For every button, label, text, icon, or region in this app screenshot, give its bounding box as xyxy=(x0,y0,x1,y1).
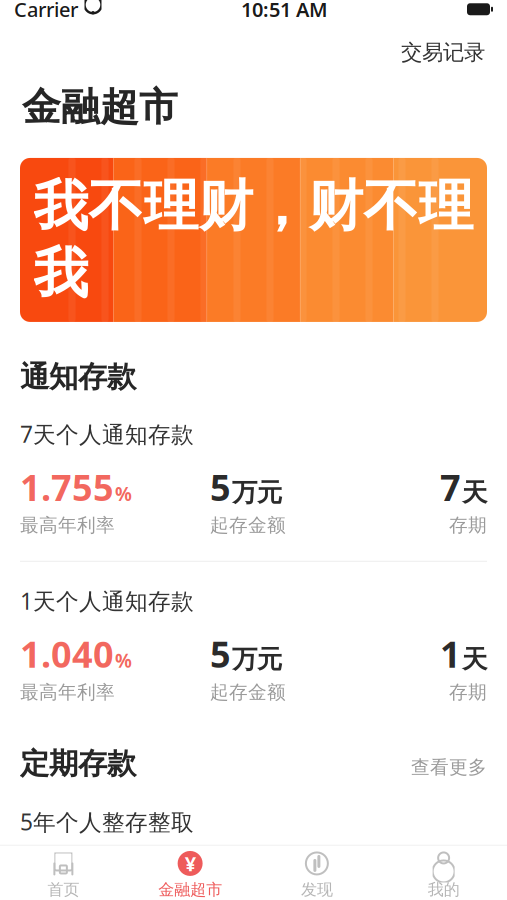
button[interactable]: 发现 xyxy=(253,845,380,900)
staticText: 查看更多 xyxy=(411,756,487,779)
staticText: 万元 xyxy=(232,644,282,675)
staticText: Carrier xyxy=(14,0,78,23)
button[interactable]: 交易记录 xyxy=(397,35,489,69)
button[interactable]: 首页 xyxy=(0,845,127,900)
staticText: 交易记录 xyxy=(401,39,485,65)
staticText: 存期 xyxy=(449,514,487,537)
staticText: % xyxy=(115,648,132,673)
staticText: 通知存款 xyxy=(20,359,136,395)
button[interactable]: 我不理财，财不理我 xyxy=(20,158,487,322)
staticText: ¥ xyxy=(185,850,196,877)
button[interactable]: 我的 xyxy=(380,845,507,900)
staticText: % xyxy=(115,481,132,506)
staticText: 1.755 xyxy=(20,463,114,511)
staticText: 5年个人整存整取 xyxy=(20,807,194,837)
staticText: 起存金额 xyxy=(210,514,286,537)
staticText: 10:51 AM xyxy=(241,0,328,23)
staticText: 定期存款 xyxy=(20,746,136,782)
staticText: 1.040 xyxy=(20,630,114,678)
button[interactable]: 查看更多 xyxy=(403,752,487,783)
staticText: 首页 xyxy=(47,880,79,900)
staticText: 金融超市 xyxy=(22,83,178,131)
staticText: 起存金额 xyxy=(210,681,286,704)
staticText: 万元 xyxy=(232,477,282,508)
staticText: 发现 xyxy=(301,880,333,900)
button[interactable]: ¥ xyxy=(127,845,254,900)
staticText: 7天个人通知存款 xyxy=(20,419,194,449)
staticText: 1天个人通知存款 xyxy=(20,586,194,616)
staticText: 天 xyxy=(462,477,487,508)
staticText: 1 xyxy=(440,630,461,678)
button[interactable]: 1天个人通知存款 xyxy=(20,584,487,706)
staticText: 天 xyxy=(462,644,487,675)
staticText: 最高年利率 xyxy=(20,681,115,704)
button[interactable]: 7天个人通知存款 xyxy=(20,417,487,539)
staticText: 我的 xyxy=(428,880,460,900)
staticText: 存期 xyxy=(449,681,487,704)
staticText: 金融超市 xyxy=(158,880,222,900)
staticText: 最高年利率 xyxy=(20,514,115,537)
staticText: 5 xyxy=(210,630,231,678)
staticText: 7 xyxy=(440,463,461,511)
staticText: 5 xyxy=(210,463,231,511)
staticText: 我不理财，财不理我 xyxy=(33,173,473,307)
